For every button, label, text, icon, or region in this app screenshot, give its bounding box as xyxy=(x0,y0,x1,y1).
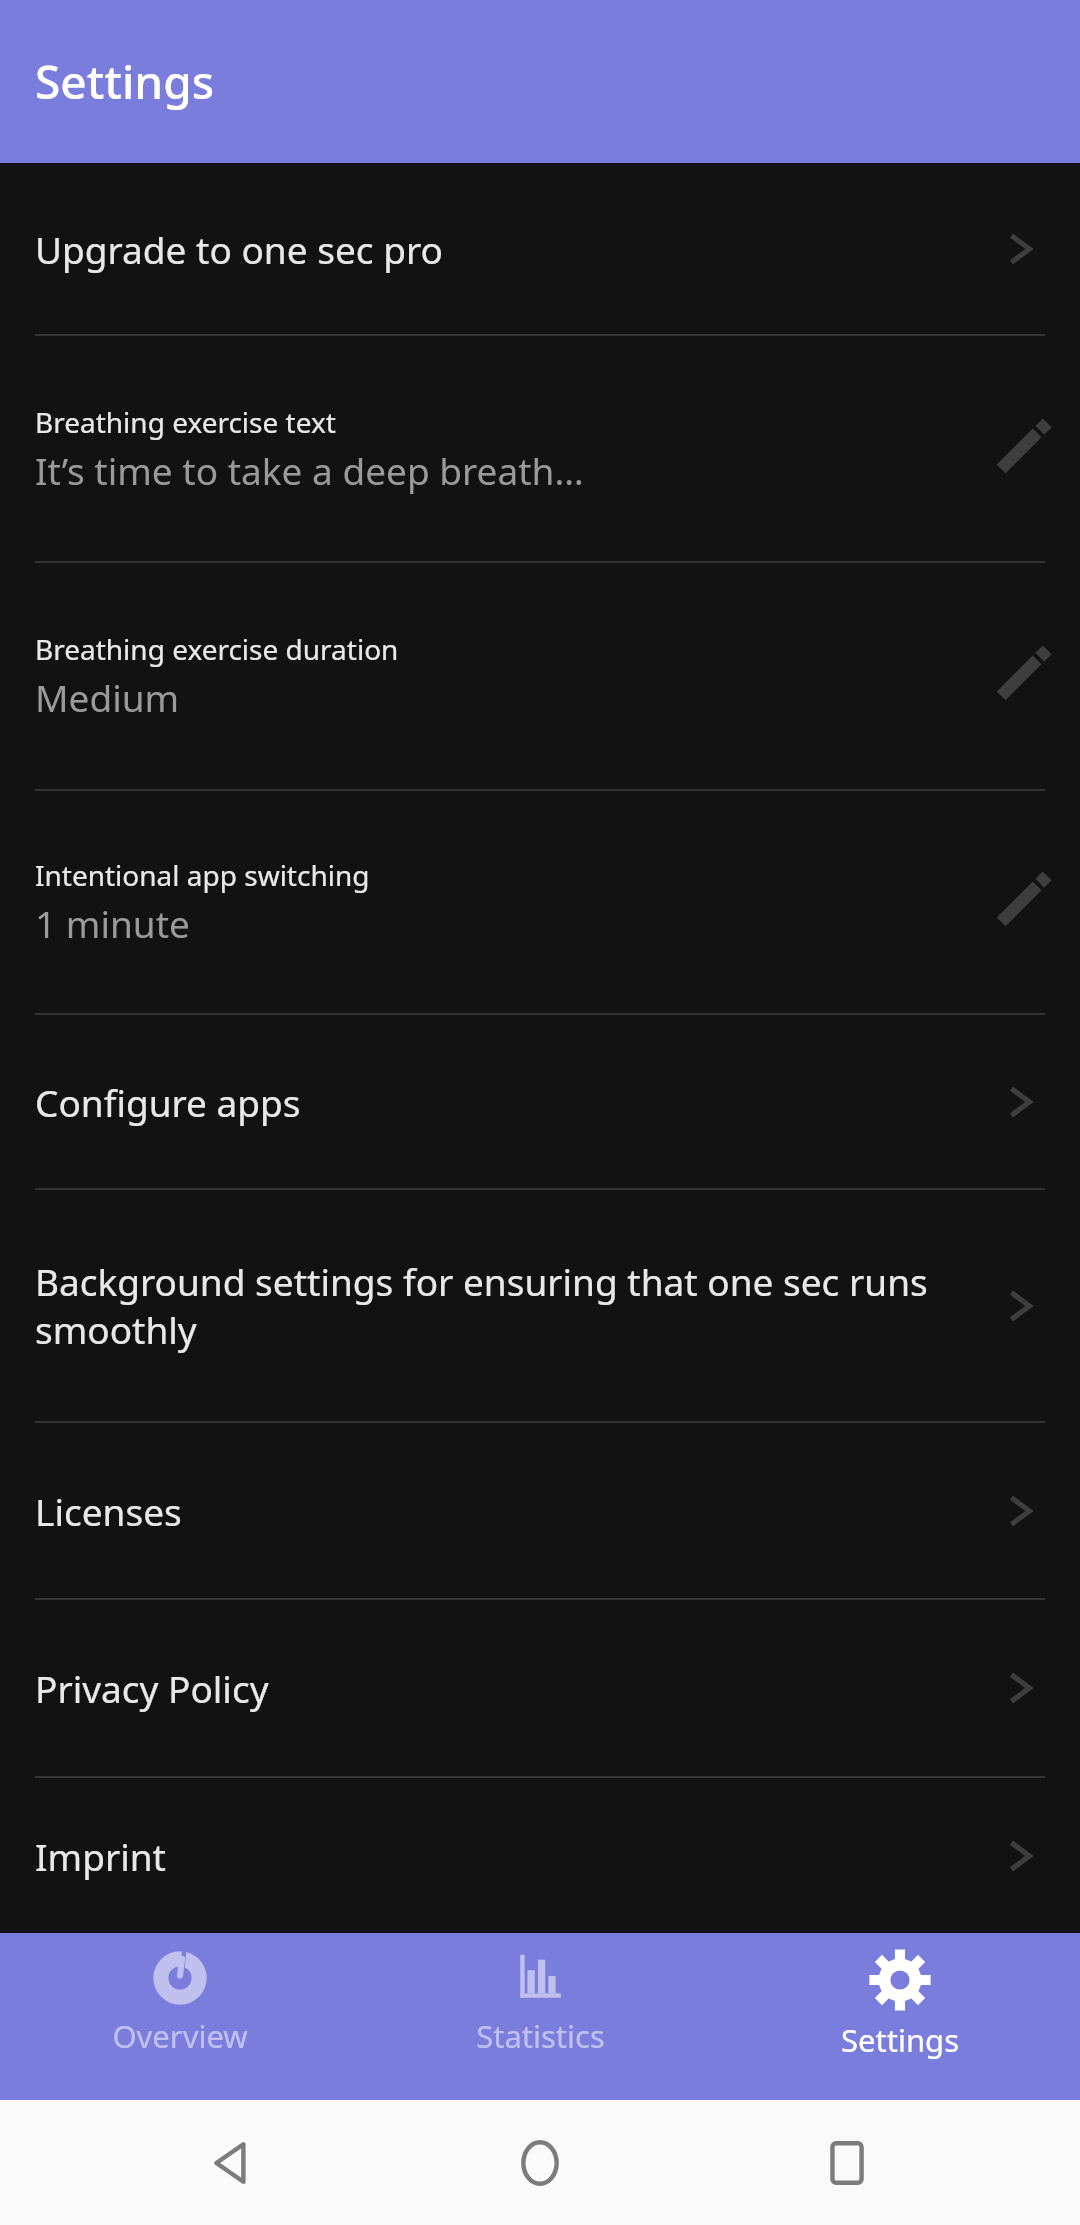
button[interactable]: Imprint xyxy=(0,1778,1080,1933)
button[interactable]: Intentional app switching xyxy=(0,791,1080,1013)
staticText: Breathing exercise duration xyxy=(35,630,399,668)
staticText: Overview xyxy=(112,2015,248,2057)
staticText: Statistics xyxy=(476,2015,605,2057)
button[interactable]: Breathing exercise duration xyxy=(0,563,1080,789)
staticText: Configure apps xyxy=(35,1077,301,1127)
button[interactable]: Breathing exercise text xyxy=(0,336,1080,561)
button[interactable]: Overview xyxy=(0,1933,360,2100)
button[interactable]: Licenses xyxy=(0,1423,1080,1598)
staticText: Breathing exercise text xyxy=(35,403,336,441)
staticText: Background settings for ensuring that on… xyxy=(35,1256,974,1355)
staticText: Upgrade to one sec pro xyxy=(35,224,443,274)
staticText: Imprint xyxy=(35,1831,166,1881)
button[interactable]: Recent apps xyxy=(814,2130,880,2196)
button[interactable]: Configure apps xyxy=(0,1015,1080,1188)
staticText: Settings xyxy=(841,2019,959,2061)
button[interactable]: Privacy Policy xyxy=(0,1600,1080,1776)
staticText: 1 minute xyxy=(35,898,190,948)
button[interactable]: Background settings for ensuring that on… xyxy=(0,1190,1080,1421)
button[interactable]: Back xyxy=(200,2130,266,2196)
staticText: Privacy Policy xyxy=(35,1663,269,1713)
button[interactable]: Statistics xyxy=(360,1933,720,2100)
staticText: Intentional app switching xyxy=(35,856,370,894)
staticText: Licenses xyxy=(35,1486,182,1536)
staticText: Settings xyxy=(35,50,215,113)
staticText: Medium xyxy=(35,672,180,722)
button[interactable]: Settings xyxy=(720,1933,1080,2100)
staticText: It’s time to take a deep breath… xyxy=(35,445,584,495)
button[interactable]: Upgrade to one sec pro xyxy=(0,163,1080,334)
button[interactable]: Home xyxy=(507,2130,573,2196)
